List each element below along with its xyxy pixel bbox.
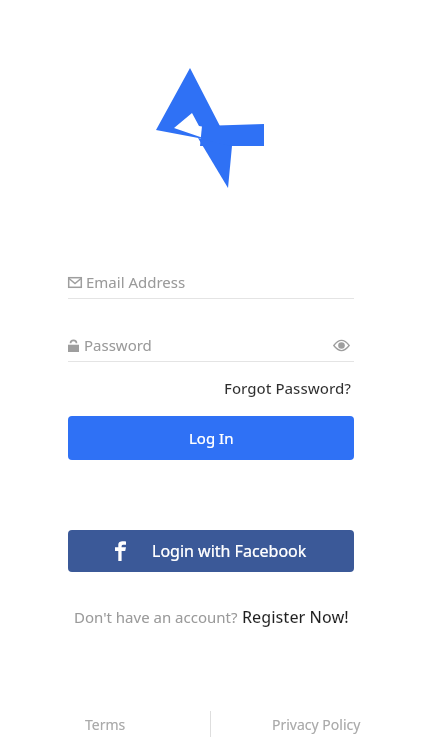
- staticText: Register Now!: [242, 606, 349, 628]
- staticText: Forgot Password?: [224, 378, 352, 398]
- button[interactable]: Login with Facebook: [68, 530, 354, 572]
- staticText: Email Address: [86, 272, 186, 292]
- button[interactable]: Password: [68, 329, 354, 361]
- staticText: Terms: [85, 715, 126, 734]
- button[interactable]: Terms: [0, 708, 210, 740]
- staticText: Password: [84, 335, 152, 355]
- button[interactable]: Forgot Password?: [222, 374, 354, 402]
- button[interactable]: Show password: [328, 332, 354, 358]
- staticText: Privacy Policy: [272, 715, 361, 734]
- staticText: Login with Facebook: [152, 540, 307, 562]
- button[interactable]: Register Now!: [242, 606, 349, 628]
- button[interactable]: Email Address: [68, 266, 354, 298]
- button[interactable]: Log In: [68, 416, 354, 460]
- staticText: Log In: [189, 428, 234, 448]
- staticText: Don't have an account?: [74, 607, 242, 627]
- button[interactable]: Privacy Policy: [211, 708, 422, 740]
